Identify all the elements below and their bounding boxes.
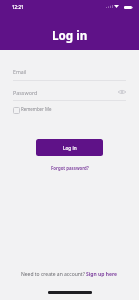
staticText: Forgot password? [51, 165, 89, 171]
staticText: Remember Me [21, 106, 52, 112]
button[interactable]: Email [13, 63, 126, 81]
button[interactable]: Forgot password? [51, 165, 89, 171]
staticText: Sign up here [86, 271, 118, 278]
staticText: Password [13, 89, 38, 96]
staticText: 12:21 [12, 4, 24, 10]
button[interactable]: Password [13, 84, 126, 101]
button[interactable]: Sign up here [86, 271, 118, 278]
button[interactable]: Log in [36, 139, 103, 156]
staticText: Email [13, 68, 27, 75]
staticText: Log in [52, 27, 88, 43]
staticText: Need to create an account? [21, 271, 85, 278]
button[interactable]: Remember Me [13, 106, 52, 113]
staticText: Log in [63, 145, 77, 151]
button[interactable]: Show password [117, 87, 127, 97]
